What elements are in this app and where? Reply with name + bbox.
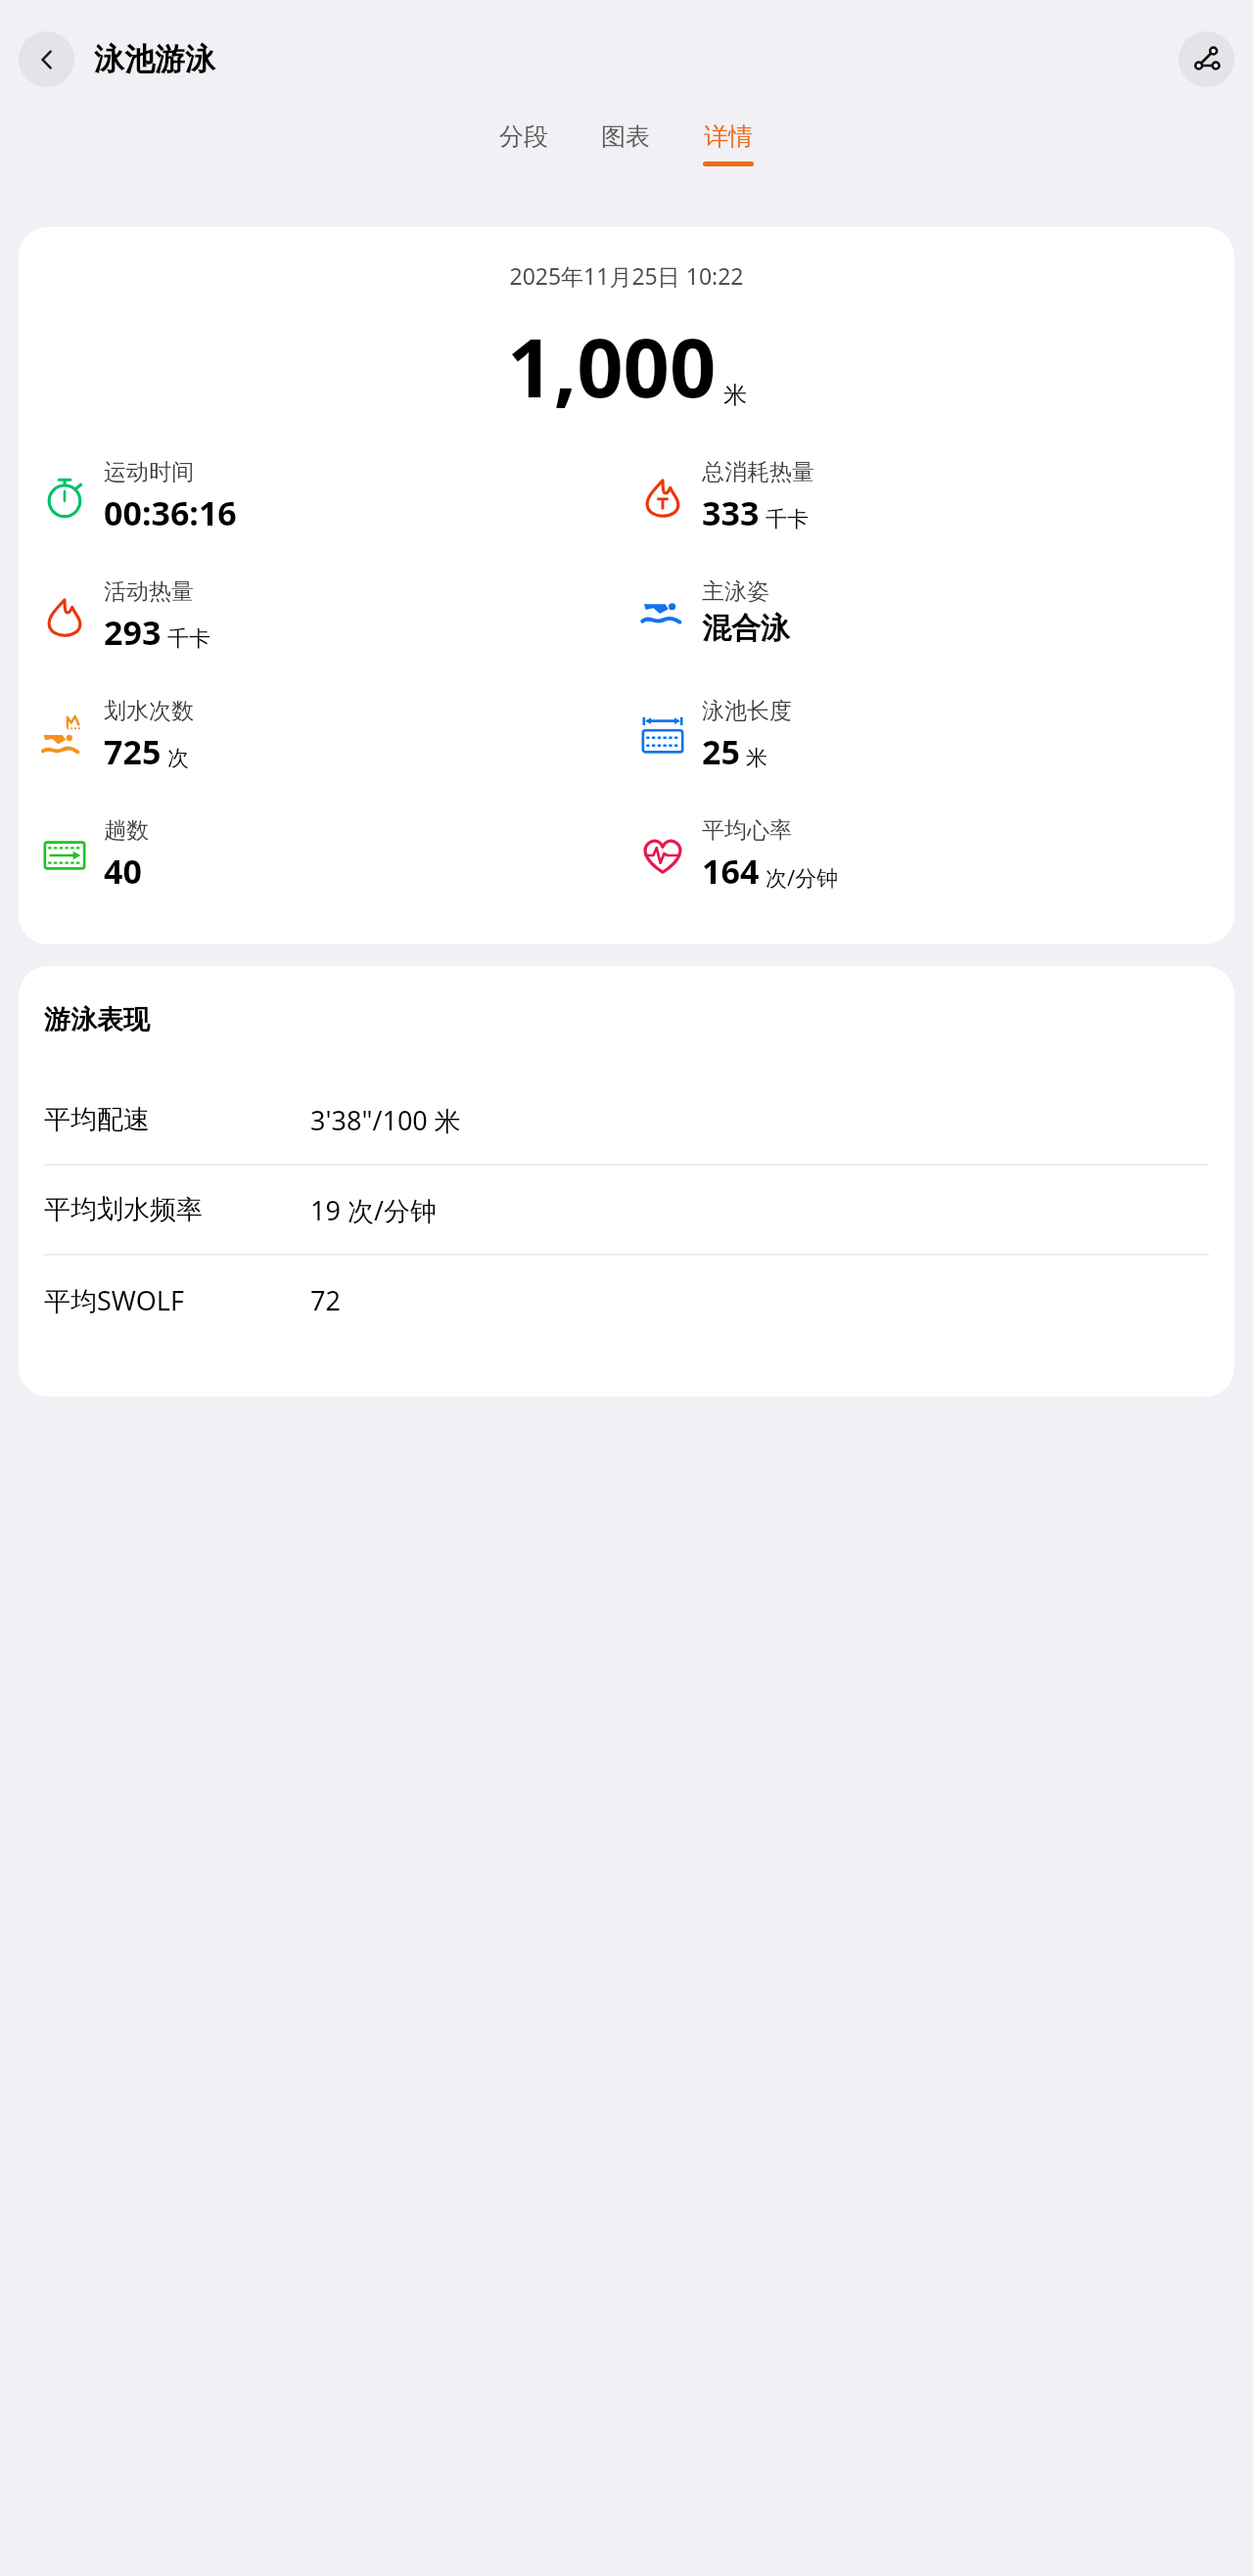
- staticText: 次: [167, 745, 189, 772]
- staticText: 主泳姿: [702, 577, 769, 606]
- staticText: 米: [746, 745, 767, 772]
- button[interactable]: 平均配速: [19, 1076, 1234, 1164]
- staticText: 00:36:16: [104, 490, 237, 535]
- staticText: 运动时间: [104, 458, 194, 486]
- staticText: 平均心率: [702, 816, 792, 845]
- staticText: 次/分钟: [766, 862, 839, 892]
- staticText: 千卡: [167, 625, 210, 653]
- staticText: 平均划水频率: [44, 1193, 310, 1226]
- staticText: 333: [702, 490, 760, 535]
- staticText: 划水次数: [104, 697, 194, 725]
- staticText: 293: [104, 610, 162, 655]
- staticText: 分段: [499, 121, 548, 152]
- button[interactable]: 平均SWOLF: [19, 1256, 1234, 1344]
- staticText: 趟数: [104, 816, 149, 845]
- staticText: 图表: [601, 121, 650, 152]
- button[interactable]: 图表: [593, 117, 658, 165]
- button[interactable]: Back: [19, 31, 74, 87]
- staticText: 25: [702, 729, 740, 774]
- staticText: 游泳表现: [44, 1003, 150, 1036]
- staticText: 164: [702, 849, 760, 894]
- button[interactable]: 平均划水频率: [19, 1166, 1234, 1254]
- staticText: 千卡: [766, 506, 809, 533]
- staticText: 72: [310, 1282, 341, 1318]
- staticText: 总消耗热量: [702, 458, 814, 486]
- staticText: 平均SWOLF: [44, 1282, 310, 1318]
- staticText: 725: [104, 729, 162, 774]
- staticText: 泳池长度: [702, 697, 792, 725]
- staticText: 19 次/分钟: [310, 1192, 437, 1228]
- staticText: 40: [104, 849, 142, 894]
- button[interactable]: 分段: [491, 117, 556, 165]
- button[interactable]: 详情: [695, 117, 762, 170]
- staticText: 活动热量: [104, 577, 194, 606]
- staticText: 米: [723, 381, 747, 410]
- staticText: 平均配速: [44, 1103, 310, 1136]
- staticText: 3'38"/100 米: [310, 1102, 461, 1138]
- staticText: 混合泳: [702, 610, 790, 647]
- button[interactable]: Share: [1179, 31, 1234, 87]
- staticText: 2025年11月25日 10:22: [19, 260, 1234, 291]
- staticText: 泳池游泳: [94, 40, 215, 78]
- staticText: 1,000: [507, 310, 717, 421]
- staticText: 详情: [704, 121, 753, 152]
